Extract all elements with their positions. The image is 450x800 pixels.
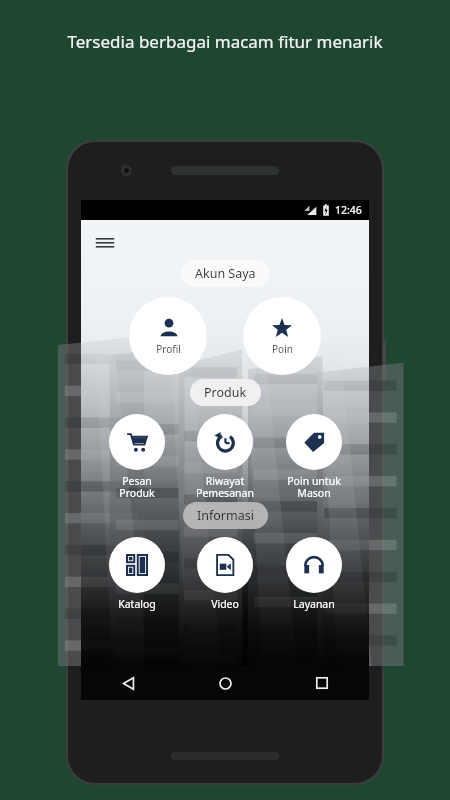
staticText: Poin (272, 342, 293, 356)
staticText: Video (211, 597, 239, 611)
staticText: Poin untuk Mason (287, 474, 341, 500)
button[interactable]: Informasi (183, 502, 268, 529)
staticText: Riwayat Pemesanan (196, 474, 254, 500)
button[interactable]: Akun Saya (181, 260, 270, 287)
button[interactable]: Riwayat Pemesanan (184, 414, 266, 500)
button[interactable]: Layanan (273, 537, 355, 611)
staticText: Layanan (293, 597, 335, 611)
staticText: Akun Saya (195, 265, 256, 282)
staticText: Katalog (118, 597, 156, 611)
button[interactable]: Recents (309, 670, 335, 696)
button[interactable]: Menu (95, 232, 115, 252)
staticText: Informasi (197, 507, 254, 524)
button[interactable]: Profil (122, 297, 214, 375)
button[interactable]: Back (115, 670, 141, 696)
button[interactable]: Home (212, 670, 238, 696)
staticText: Produk (204, 384, 247, 401)
button[interactable]: Katalog (96, 537, 178, 611)
button[interactable]: Pesan Produk (96, 414, 178, 500)
button[interactable]: Poin untuk Mason (273, 414, 355, 500)
button[interactable]: Poin (236, 297, 328, 375)
button[interactable]: Video (184, 537, 266, 611)
staticText: 12:46 (335, 203, 362, 217)
staticText: Profil (156, 342, 181, 356)
staticText: Tersedia berbagai macam fitur menarik (67, 30, 383, 53)
staticText: Pesan Produk (119, 474, 155, 500)
button[interactable]: Produk (190, 379, 261, 406)
